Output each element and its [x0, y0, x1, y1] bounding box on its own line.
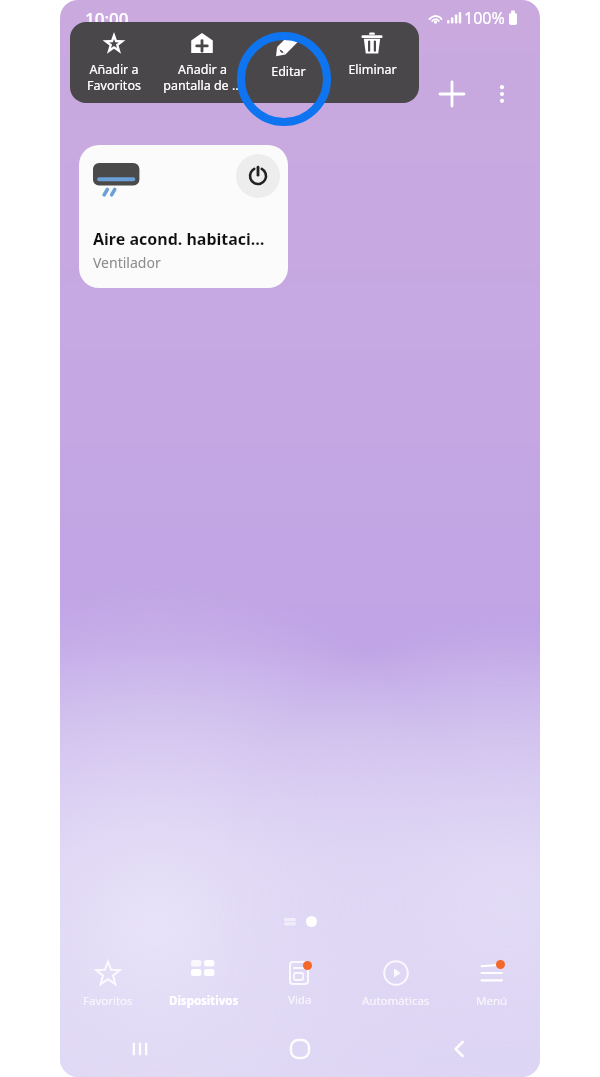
staticText: Favoritos	[83, 993, 133, 1009]
staticText: Automáticas	[362, 993, 430, 1009]
button[interactable]: Añadir a pantalla de …	[158, 22, 246, 103]
button[interactable]: Vida	[252, 947, 348, 1021]
staticText: Añadir a pantalla de …	[163, 61, 242, 93]
button[interactable]: Añadir	[429, 71, 475, 117]
button[interactable]: Atrás	[380, 1021, 540, 1077]
button[interactable]: Editar	[246, 22, 330, 103]
staticText: Eliminar	[348, 61, 397, 78]
staticText: Editar	[271, 63, 306, 80]
button[interactable]: Encender	[79, 145, 288, 288]
button[interactable]: Eliminar	[330, 22, 414, 103]
button[interactable]: Inicio	[220, 1021, 380, 1077]
staticText: Dispositivos	[169, 993, 239, 1009]
staticText: 100%	[464, 7, 505, 29]
staticText: Ventilador	[93, 253, 161, 272]
button[interactable]: Más opciones	[479, 71, 525, 117]
staticText: Aire acond. habitaci…	[93, 228, 265, 250]
staticText: Menú	[476, 993, 508, 1009]
button[interactable]: Menú	[444, 947, 540, 1021]
button[interactable]: Añadir a Favoritos	[70, 22, 158, 103]
staticText: 10:00	[85, 7, 129, 30]
button[interactable]: Dispositivos	[156, 947, 252, 1021]
staticText: Vida	[288, 992, 312, 1008]
button[interactable]: Encender	[236, 154, 280, 198]
button[interactable]: Favoritos	[60, 947, 156, 1021]
button[interactable]: Recientes	[60, 1021, 220, 1077]
button[interactable]: Automáticas	[348, 947, 444, 1021]
staticText: Añadir a Favoritos	[87, 61, 141, 93]
